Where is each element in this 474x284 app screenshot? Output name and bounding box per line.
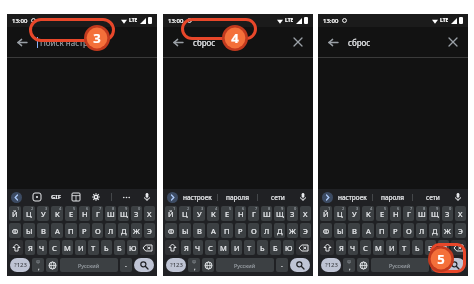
button[interactable]: С: [360, 240, 371, 255]
button[interactable]: Ь: [257, 240, 268, 255]
button[interactable]: Search: [445, 258, 465, 272]
button[interactable]: С: [205, 240, 216, 255]
button[interactable]: Д: [274, 223, 285, 238]
button[interactable]: Ы: [179, 223, 191, 238]
button[interactable]: Д: [118, 223, 129, 238]
button[interactable]: Switch language: [46, 258, 58, 272]
button[interactable]: GIF: [51, 193, 61, 201]
button[interactable]: К: [51, 206, 63, 221]
button[interactable]: М: [62, 240, 73, 255]
button[interactable]: Comma: [188, 258, 200, 272]
button[interactable]: П: [221, 223, 233, 238]
button[interactable]: Ш: [261, 206, 272, 221]
button[interactable]: Л: [261, 223, 272, 238]
button[interactable]: Г: [92, 206, 103, 221]
button[interactable]: Е: [376, 206, 388, 221]
button[interactable]: О: [92, 223, 103, 238]
button[interactable]: ?123: [166, 258, 186, 272]
button[interactable]: Г: [403, 206, 414, 221]
button[interactable]: Русский: [371, 258, 429, 272]
button[interactable]: Shift: [320, 240, 334, 255]
button[interactable]: А: [362, 223, 374, 238]
button[interactable]: Я: [336, 240, 346, 255]
button[interactable]: More: [120, 191, 132, 203]
button[interactable]: Ы: [334, 223, 346, 238]
button[interactable]: Т: [88, 240, 99, 255]
button[interactable]: Д: [429, 223, 440, 238]
button[interactable]: Е: [65, 206, 77, 221]
button[interactable]: Й: [320, 206, 332, 221]
button[interactable]: Ь: [101, 240, 112, 255]
button[interactable]: Э: [144, 223, 155, 238]
button[interactable]: Р: [235, 223, 246, 238]
button[interactable]: Voice input: [141, 191, 153, 203]
button[interactable]: сети: [258, 193, 297, 202]
button[interactable]: Expand toolbar: [167, 192, 178, 203]
button[interactable]: В: [348, 223, 360, 238]
button[interactable]: Ч: [37, 240, 47, 255]
button[interactable]: Clear: [289, 33, 307, 51]
button[interactable]: Е: [221, 206, 233, 221]
button[interactable]: Shift: [165, 240, 179, 255]
button[interactable]: Ж: [442, 223, 453, 238]
button[interactable]: Л: [416, 223, 427, 238]
button[interactable]: И: [75, 240, 86, 255]
button[interactable]: Ч: [348, 240, 358, 255]
button[interactable]: Expand: [11, 192, 22, 203]
button[interactable]: З: [287, 206, 298, 221]
button[interactable]: Ю: [127, 240, 138, 255]
button[interactable]: И: [386, 240, 397, 255]
button[interactable]: Русский: [216, 258, 274, 272]
button[interactable]: Voice input: [297, 191, 309, 203]
button[interactable]: сброс: [348, 37, 444, 48]
button[interactable]: Shift: [9, 240, 23, 255]
button[interactable]: И: [231, 240, 242, 255]
button[interactable]: настроек: [178, 193, 217, 202]
button[interactable]: Period: [120, 258, 132, 272]
button[interactable]: сети: [413, 193, 452, 202]
button[interactable]: Expand toolbar: [322, 192, 333, 203]
button[interactable]: Backspace: [140, 240, 155, 255]
button[interactable]: Х: [455, 206, 466, 221]
button[interactable]: Backspace: [451, 240, 466, 255]
button[interactable]: Н: [390, 206, 401, 221]
button[interactable]: Щ: [429, 206, 440, 221]
button[interactable]: Backspace: [296, 240, 311, 255]
button[interactable]: Back: [324, 33, 342, 51]
button[interactable]: Search: [134, 258, 154, 272]
button[interactable]: Щ: [118, 206, 129, 221]
button[interactable]: У: [193, 206, 205, 221]
button[interactable]: У: [348, 206, 360, 221]
button[interactable]: Поиск настроек: [37, 37, 151, 48]
button[interactable]: Switch language: [202, 258, 214, 272]
button[interactable]: Н: [235, 206, 246, 221]
button[interactable]: Ц: [23, 206, 35, 221]
button[interactable]: Ш: [105, 206, 116, 221]
button[interactable]: Switch language: [357, 258, 369, 272]
button[interactable]: У: [37, 206, 49, 221]
button[interactable]: Period: [431, 258, 443, 272]
button[interactable]: Ч: [193, 240, 203, 255]
button[interactable]: Й: [9, 206, 21, 221]
button[interactable]: Clipboard: [70, 191, 82, 203]
button[interactable]: К: [207, 206, 219, 221]
button[interactable]: пароля: [373, 193, 412, 202]
button[interactable]: Н: [79, 206, 90, 221]
button[interactable]: Search: [290, 258, 310, 272]
button[interactable]: Ю: [283, 240, 294, 255]
button[interactable]: сброс: [193, 37, 289, 48]
button[interactable]: К: [362, 206, 374, 221]
button[interactable]: В: [37, 223, 49, 238]
button[interactable]: Б: [270, 240, 281, 255]
button[interactable]: Ж: [287, 223, 298, 238]
button[interactable]: Clear: [444, 33, 462, 51]
button[interactable]: А: [51, 223, 63, 238]
button[interactable]: настроек: [333, 193, 372, 202]
button[interactable]: Б: [114, 240, 125, 255]
button[interactable]: Stickers: [31, 191, 43, 203]
button[interactable]: Я: [25, 240, 35, 255]
button[interactable]: Voice input: [452, 191, 464, 203]
button[interactable]: ?123: [10, 258, 30, 272]
button[interactable]: В: [193, 223, 205, 238]
button[interactable]: Ь: [412, 240, 423, 255]
